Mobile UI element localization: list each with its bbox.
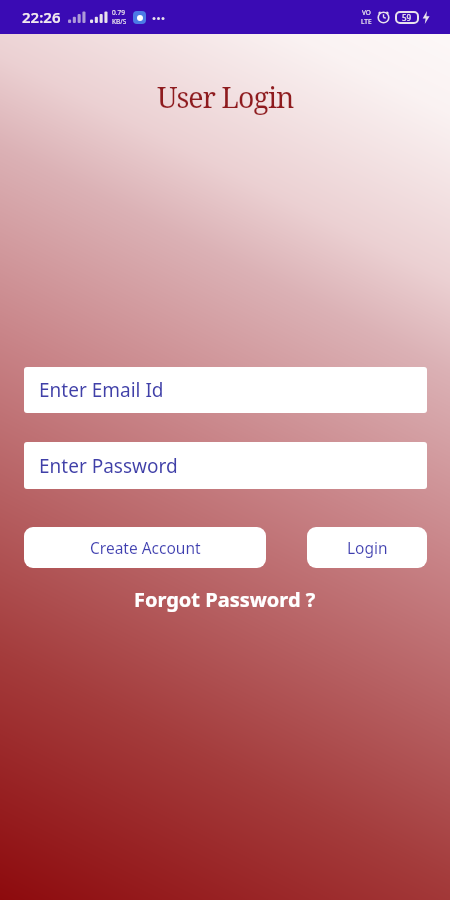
staticText: LTE (361, 17, 372, 26)
button[interactable]: Login (307, 527, 427, 568)
staticText: Enter Email Id (39, 377, 164, 403)
button[interactable]: Create Account (24, 527, 266, 568)
staticText: Login (347, 537, 388, 558)
staticText: Create Account (90, 537, 201, 558)
staticText: 0.79 (112, 8, 125, 17)
button[interactable]: Enter Email Id (24, 367, 427, 413)
button[interactable]: Forgot Password ? (134, 586, 316, 613)
staticText: 22:26 (22, 7, 61, 27)
staticText: Enter Password (39, 453, 178, 479)
button[interactable]: Enter Password (24, 442, 427, 489)
staticText: KB/S (112, 17, 127, 26)
staticText: 59 (402, 12, 412, 23)
staticText: User Login (157, 78, 294, 117)
staticText: VO (362, 8, 371, 17)
